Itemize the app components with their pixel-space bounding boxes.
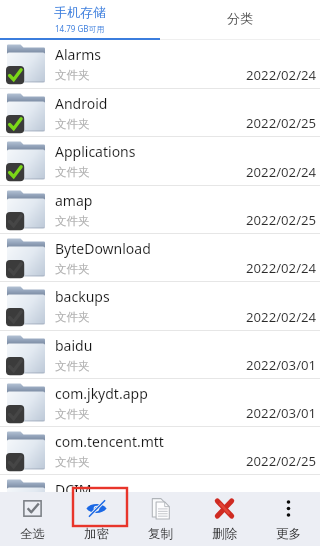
staticText: 2022/02/25 [246, 114, 317, 132]
button[interactable]: Applications [0, 137, 320, 186]
button[interactable]: DCIM [0, 475, 320, 523]
staticText: 全选 [20, 526, 45, 542]
staticText: 2022/02/25 [246, 211, 317, 229]
staticText: 文件夹 [55, 407, 90, 421]
staticText: 删除 [212, 526, 237, 542]
staticText: 文件夹 [55, 262, 90, 276]
staticText: Android [55, 94, 108, 113]
button[interactable]: 更多 [256, 492, 320, 546]
button[interactable]: Alarms [0, 40, 320, 89]
staticText: 2022/03/01 [246, 404, 317, 422]
staticText: Applications [55, 142, 136, 161]
staticText: 文件夹 [55, 117, 90, 131]
staticText: ByteDownload [55, 239, 151, 258]
staticText: 2022/02/24 [246, 500, 317, 518]
button[interactable]: 复制 [128, 492, 192, 546]
button[interactable]: com.jkydt.app [0, 379, 320, 427]
staticText: 加密 [84, 526, 109, 542]
staticText: 分类 [227, 10, 253, 26]
button[interactable]: 全选 [0, 492, 64, 546]
staticText: 复制 [148, 526, 173, 542]
button[interactable]: 手机存储 [0, 0, 160, 40]
staticText: DCIM [55, 480, 92, 499]
staticText: 2022/02/25 [246, 452, 317, 470]
staticText: com.tencent.mtt [55, 432, 164, 451]
button[interactable]: amap [0, 186, 320, 234]
staticText: 文件夹 [55, 310, 90, 324]
button[interactable]: 加密 [64, 492, 128, 546]
staticText: 14.79 GB可用 [55, 23, 105, 34]
button[interactable]: com.tencent.mtt [0, 427, 320, 475]
staticText: 2022/02/24 [246, 66, 317, 84]
staticText: 2022/02/24 [246, 163, 317, 181]
staticText: 2022/03/01 [246, 356, 317, 374]
staticText: 文件夹 [55, 503, 90, 517]
staticText: backups [55, 287, 110, 306]
staticText: 文件夹 [55, 165, 90, 179]
staticText: 2022/02/24 [246, 308, 317, 326]
staticText: 文件夹 [55, 455, 90, 469]
staticText: 2022/02/24 [246, 259, 317, 277]
staticText: 手机存储 [54, 4, 106, 20]
staticText: 文件夹 [55, 359, 90, 373]
button[interactable]: Android [0, 89, 320, 137]
staticText: amap [55, 191, 93, 210]
staticText: Alarms [55, 45, 101, 64]
button[interactable]: baidu [0, 331, 320, 379]
staticText: baidu [55, 336, 93, 355]
button[interactable]: 删除 [192, 492, 256, 546]
staticText: 更多 [276, 526, 301, 542]
staticText: 文件夹 [55, 214, 90, 228]
staticText: 文件夹 [55, 68, 90, 82]
staticText: com.jkydt.app [55, 384, 148, 403]
button[interactable]: backups [0, 282, 320, 331]
button[interactable]: 分类 [160, 0, 320, 40]
button[interactable]: ByteDownload [0, 234, 320, 282]
